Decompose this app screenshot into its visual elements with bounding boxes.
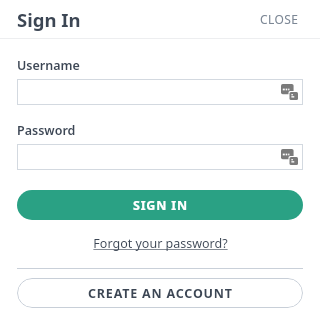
other: Autofill Password — [281, 149, 298, 165]
staticText: Password — [17, 122, 76, 139]
other: Autofill Username — [281, 84, 298, 100]
staticText: Username — [17, 57, 80, 74]
staticText: SIGN IN — [133, 197, 188, 214]
staticText: CREATE AN ACCOUNT — [88, 285, 233, 302]
button[interactable]: Autofill Username — [17, 79, 303, 105]
staticText: Sign In — [17, 7, 81, 32]
button[interactable]: CREATE AN ACCOUNT — [17, 278, 303, 308]
button[interactable]: Forgot your password? — [87, 233, 234, 254]
button[interactable]: SIGN IN — [17, 190, 303, 220]
button[interactable]: CLOSE — [256, 7, 303, 31]
staticText: Forgot your password? — [93, 235, 228, 252]
button[interactable]: Autofill Password — [17, 144, 303, 170]
staticText: CLOSE — [260, 11, 299, 27]
